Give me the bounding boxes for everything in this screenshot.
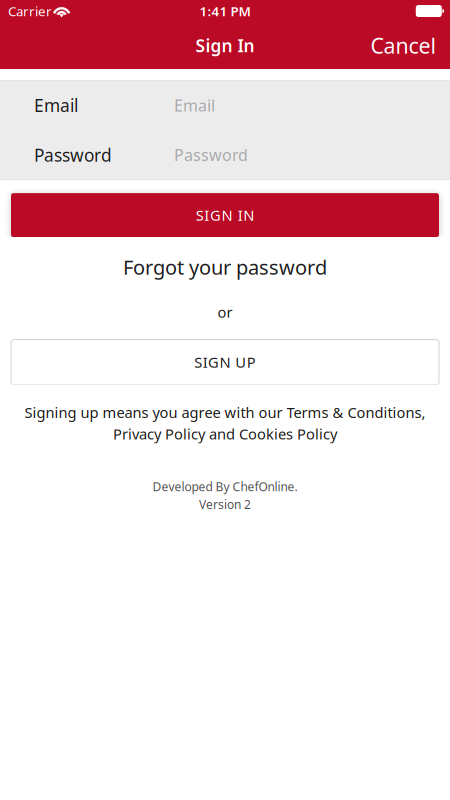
staticText: Forgot your password [123, 254, 327, 280]
staticText: or [217, 302, 232, 322]
staticText: Email [34, 94, 78, 117]
button[interactable]: SIGN UP [11, 340, 439, 385]
staticText: Privacy Policy and Cookies Policy [113, 424, 337, 444]
button[interactable]: Forgot your password [123, 254, 327, 280]
staticText: 1:41 PM [199, 2, 250, 20]
staticText: Version 2 [199, 496, 251, 512]
staticText: Signing up means you agree with our Term… [24, 403, 425, 422]
staticText: SIGN IN [196, 205, 254, 225]
staticText: Email [174, 95, 215, 116]
staticText: Cancel [370, 31, 436, 60]
staticText: Carrier [8, 2, 52, 20]
staticText: Sign In [195, 34, 254, 57]
staticText: Developed By ChefOnline. [152, 479, 297, 494]
staticText: SIGN UP [194, 352, 256, 372]
staticText: Password [34, 143, 112, 166]
button[interactable]: Cancel [357, 21, 450, 70]
button[interactable]: SIGN IN [11, 193, 439, 237]
staticText: Password [174, 144, 248, 165]
